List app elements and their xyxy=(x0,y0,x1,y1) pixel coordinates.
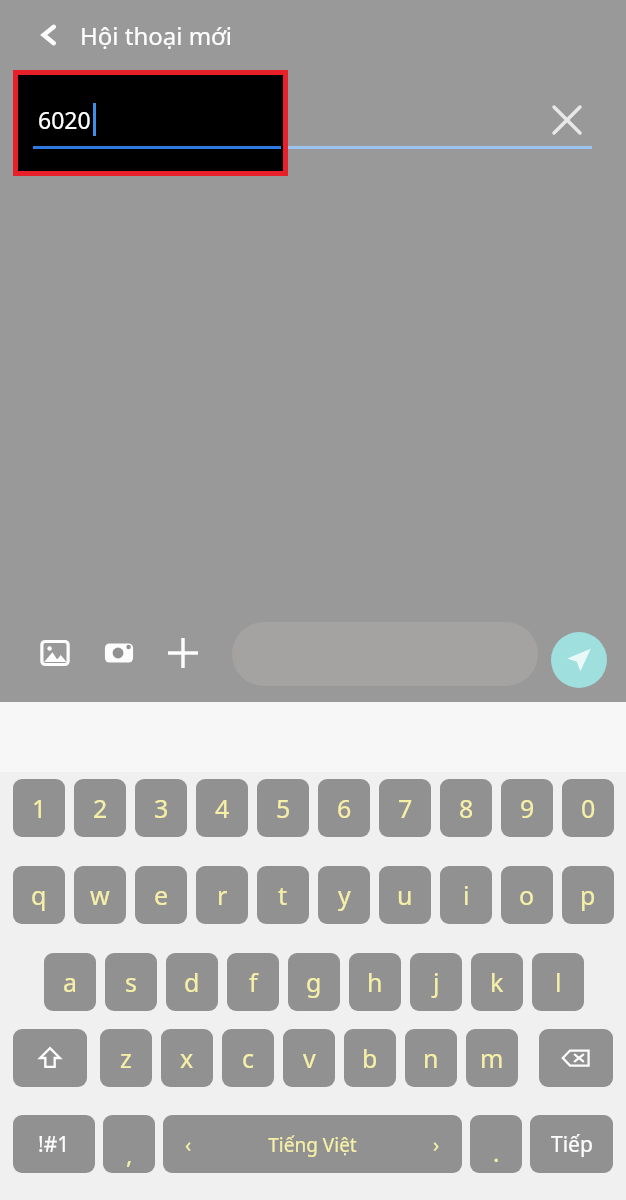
staticText: y xyxy=(338,878,351,912)
staticText: 8 xyxy=(459,791,474,825)
staticText: 1 xyxy=(32,791,47,825)
staticText: g xyxy=(306,965,322,999)
button[interactable]: k xyxy=(471,953,523,1011)
button[interactable]: 6 xyxy=(318,779,370,837)
button[interactable]: l xyxy=(532,953,584,1011)
staticText: 6 xyxy=(337,791,352,825)
button[interactable]: q xyxy=(13,866,65,924)
staticText: f xyxy=(249,965,258,999)
button[interactable]: 9 xyxy=(501,779,553,837)
staticText: e xyxy=(154,878,169,912)
staticText: h xyxy=(367,965,383,999)
button[interactable]: ‹ xyxy=(163,1115,462,1173)
button[interactable]: g xyxy=(288,953,340,1011)
button[interactable]: . xyxy=(470,1115,522,1173)
staticText: 3 xyxy=(154,791,169,825)
button[interactable]: d xyxy=(166,953,218,1011)
button[interactable]: f xyxy=(227,953,279,1011)
button[interactable]: e xyxy=(135,866,187,924)
staticText: ‹ xyxy=(185,1131,192,1158)
button[interactable]: 7 xyxy=(379,779,431,837)
staticText: › xyxy=(433,1131,440,1158)
button[interactable]: m xyxy=(466,1029,518,1087)
button[interactable]: Gallery xyxy=(30,628,80,678)
staticText: q xyxy=(31,878,47,912)
staticText: m xyxy=(480,1041,504,1075)
button[interactable]: Shift xyxy=(13,1029,87,1087)
button[interactable]: 4 xyxy=(196,779,248,837)
button[interactable]: 0 xyxy=(562,779,614,837)
staticText: a xyxy=(63,965,78,999)
button[interactable]: 1 xyxy=(13,779,65,837)
button[interactable]: 3 xyxy=(135,779,187,837)
staticText: o xyxy=(519,878,535,912)
button[interactable]: Camera xyxy=(94,628,144,678)
staticText: 5 xyxy=(276,791,291,825)
button[interactable]: x xyxy=(161,1029,213,1087)
staticText: j xyxy=(433,965,440,999)
staticText: c xyxy=(242,1041,255,1075)
staticText: Tiếp xyxy=(551,1130,593,1159)
button[interactable]: u xyxy=(379,866,431,924)
button[interactable]: t xyxy=(257,866,309,924)
staticText: t xyxy=(278,878,288,912)
staticText: 9 xyxy=(520,791,535,825)
staticText: r xyxy=(217,878,228,912)
staticText: . xyxy=(493,1136,500,1169)
button[interactable]: 5 xyxy=(257,779,309,837)
button[interactable]: , xyxy=(103,1115,155,1173)
button[interactable]: b xyxy=(344,1029,396,1087)
button[interactable]: v xyxy=(283,1029,335,1087)
staticText: x xyxy=(180,1041,194,1075)
staticText: w xyxy=(90,878,110,912)
staticText: 6020 xyxy=(38,104,91,135)
staticText: Hội thoại mới xyxy=(80,19,233,52)
button[interactable]: Clear xyxy=(543,96,591,144)
button[interactable]: Send xyxy=(551,632,607,688)
button[interactable]: Next xyxy=(530,1115,613,1173)
staticText: z xyxy=(120,1041,132,1075)
button[interactable]: h xyxy=(349,953,401,1011)
button[interactable]: p xyxy=(562,866,614,924)
staticText: l xyxy=(555,965,562,999)
staticText: n xyxy=(423,1041,439,1075)
button[interactable]: 8 xyxy=(440,779,492,837)
staticText: v xyxy=(303,1041,316,1075)
button[interactable]: z xyxy=(100,1029,152,1087)
button[interactable]: w xyxy=(74,866,126,924)
button[interactable]: i xyxy=(440,866,492,924)
button[interactable]: Back xyxy=(32,18,66,52)
button[interactable]: j xyxy=(410,953,462,1011)
button[interactable]: 2 xyxy=(74,779,126,837)
staticText: d xyxy=(184,965,200,999)
staticText: 4 xyxy=(215,791,230,825)
button[interactable]: c xyxy=(222,1029,274,1087)
button[interactable]: r xyxy=(196,866,248,924)
staticText: i xyxy=(463,878,470,912)
staticText: 7 xyxy=(398,791,413,825)
staticText: s xyxy=(125,965,137,999)
staticText: 2 xyxy=(93,791,108,825)
staticText: u xyxy=(397,878,413,912)
staticText: 0 xyxy=(581,791,596,825)
staticText: , xyxy=(126,1138,133,1171)
staticText: k xyxy=(490,965,504,999)
button[interactable]: o xyxy=(501,866,553,924)
staticText: p xyxy=(580,878,596,912)
button[interactable]: Backspace xyxy=(539,1029,613,1087)
staticText: b xyxy=(362,1041,378,1075)
button[interactable]: Add xyxy=(158,628,208,678)
button[interactable]: Symbols xyxy=(13,1115,95,1173)
button[interactable]: s xyxy=(105,953,157,1011)
staticText: !#1 xyxy=(38,1130,70,1159)
staticText: Tiếng Việt xyxy=(192,1132,433,1158)
button[interactable]: n xyxy=(405,1029,457,1087)
button[interactable]: y xyxy=(318,866,370,924)
button[interactable]: a xyxy=(44,953,96,1011)
